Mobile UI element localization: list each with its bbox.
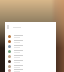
button[interactable]	[5, 49, 56, 54]
button[interactable]	[5, 64, 56, 69]
button[interactable]	[5, 69, 56, 72]
button[interactable]	[5, 39, 56, 44]
button[interactable]	[5, 34, 56, 39]
button[interactable]	[5, 24, 56, 30]
button[interactable]	[5, 44, 56, 49]
button[interactable]	[5, 59, 56, 64]
button[interactable]	[5, 54, 56, 59]
